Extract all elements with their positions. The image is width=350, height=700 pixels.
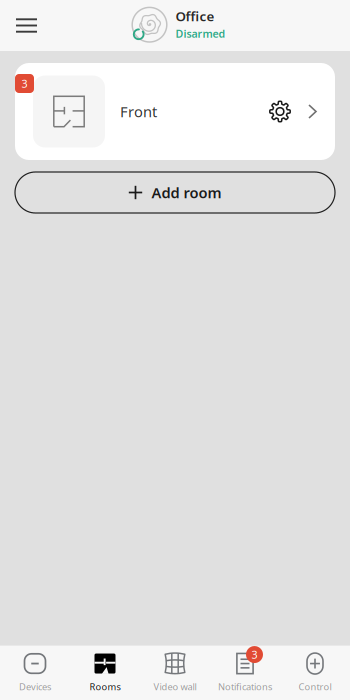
staticText: Add room [151, 183, 221, 202]
staticText: Rooms [89, 681, 120, 693]
staticText: Video wall [153, 681, 196, 693]
button[interactable]: Rooms [70, 646, 140, 700]
staticText: Notifications [218, 681, 272, 693]
button[interactable]: Menu [4, 3, 48, 47]
button[interactable]: Devices [0, 646, 70, 700]
button[interactable]: 3 [210, 646, 280, 700]
staticText: 3 [21, 76, 27, 91]
staticText: Devices [19, 681, 51, 693]
button[interactable]: Video wall [140, 646, 210, 700]
staticText: Disarmed [175, 26, 225, 41]
staticText: 3 [251, 647, 257, 662]
button[interactable]: Front [15, 63, 335, 160]
staticText: Front [120, 102, 157, 121]
button[interactable]: Add room [15, 172, 335, 213]
staticText: Control [298, 681, 331, 693]
staticText: Office [175, 7, 214, 25]
button[interactable]: Control [280, 646, 350, 700]
